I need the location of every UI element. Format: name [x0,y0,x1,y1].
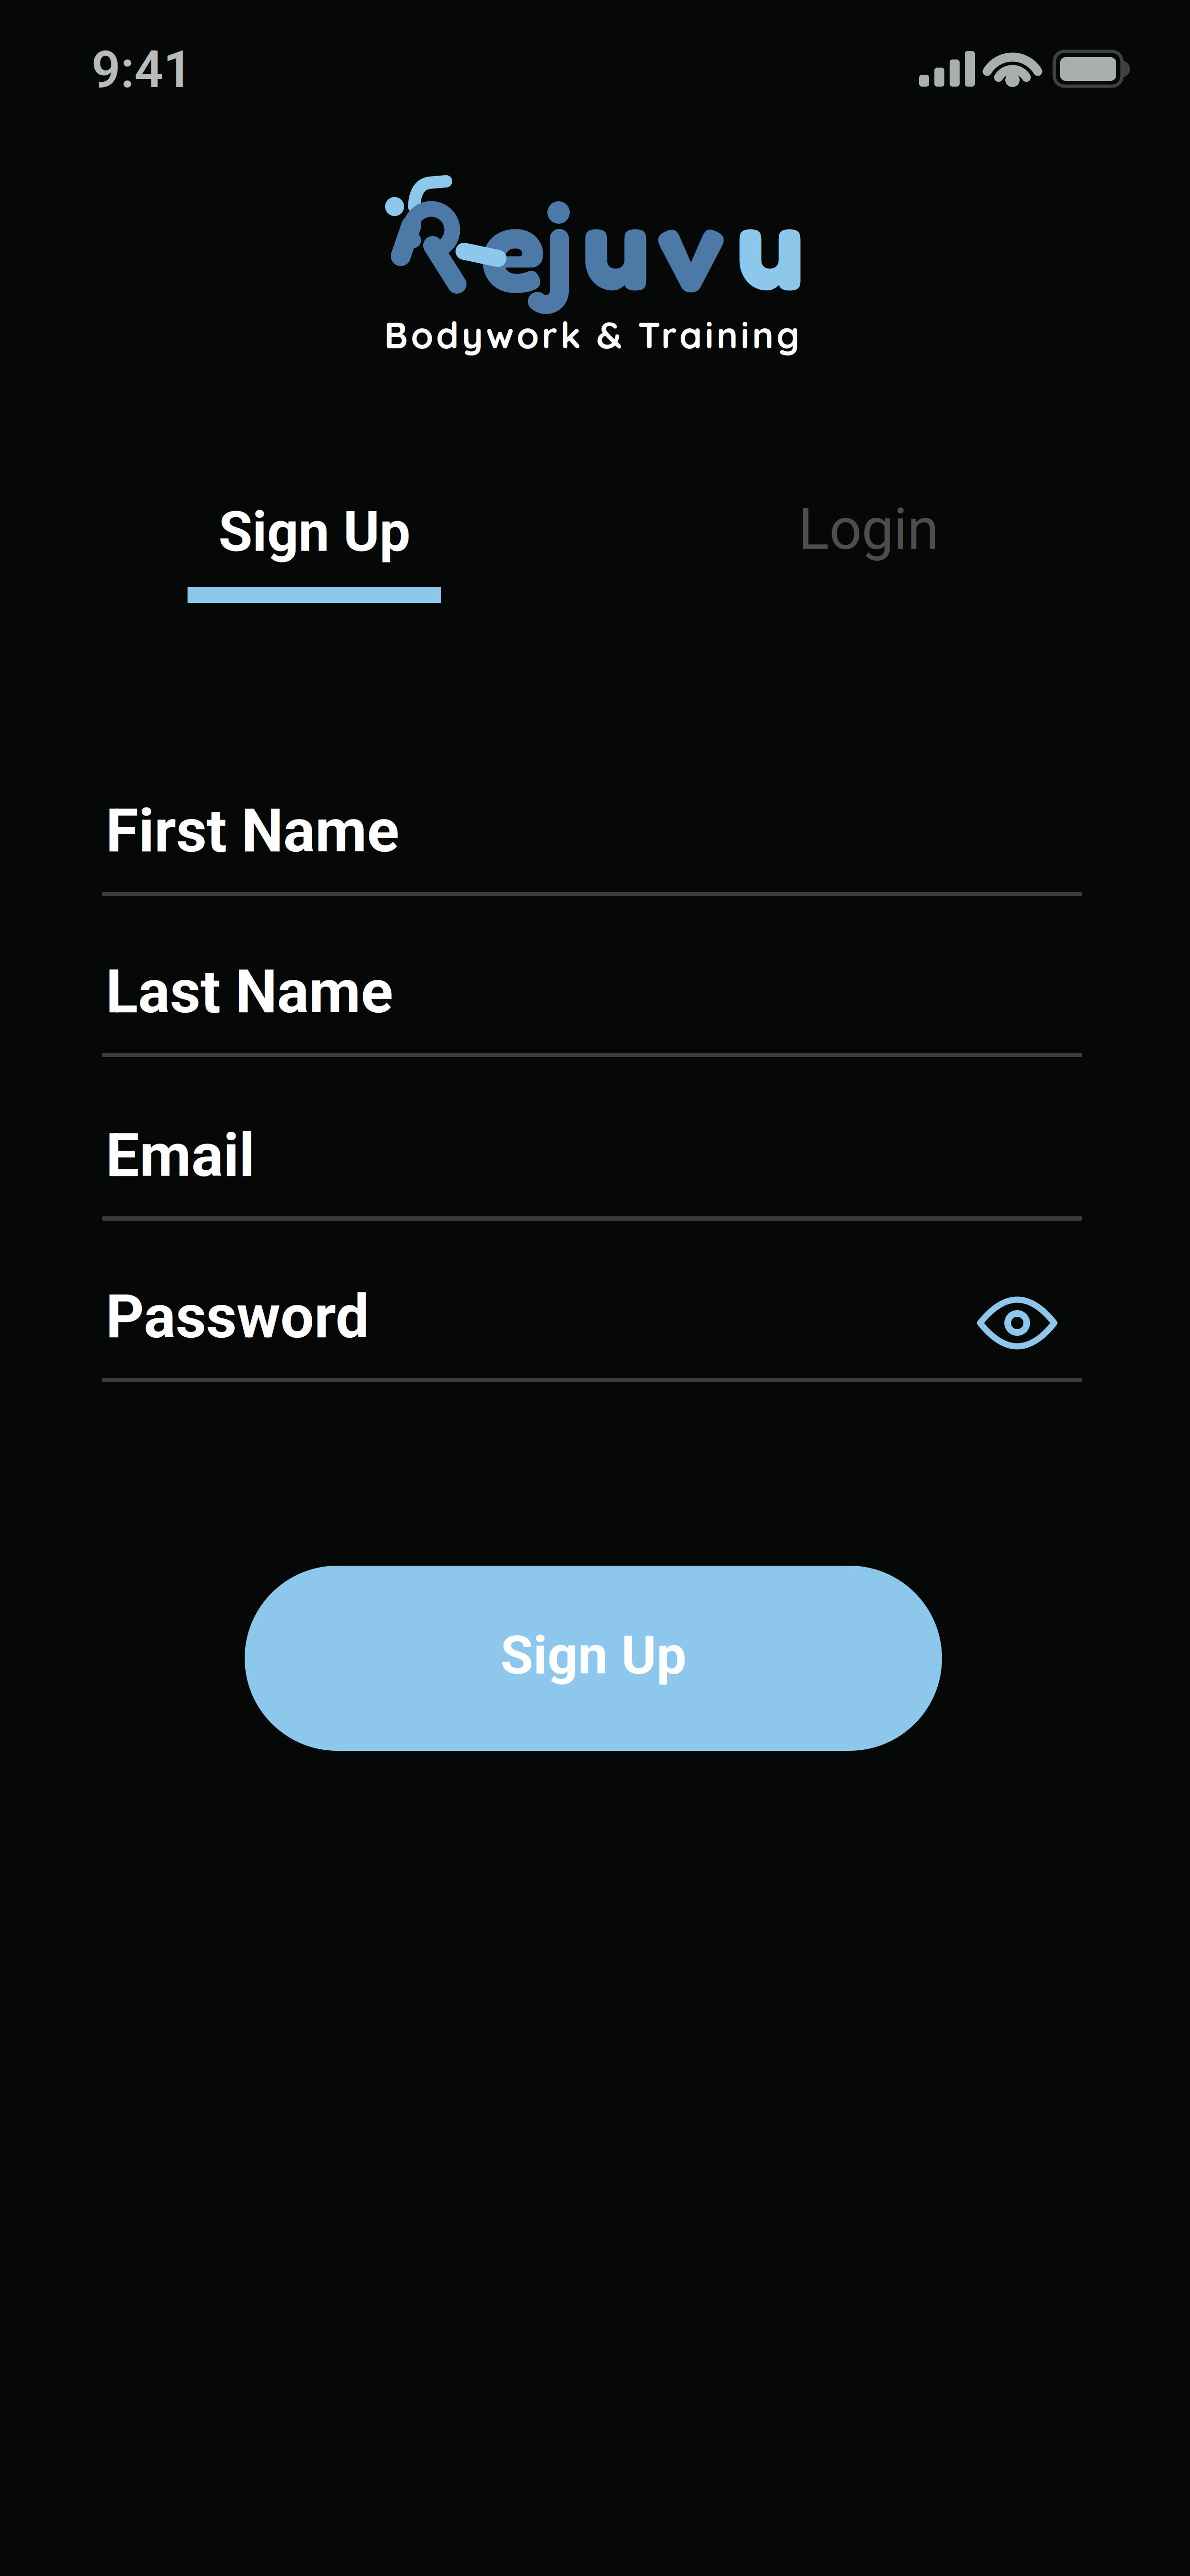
staticText: Last Name [106,957,393,1027]
button[interactable]: First Name [102,796,1082,896]
staticText: Sign Up [218,500,410,564]
staticText: 9:41 [91,40,192,99]
button[interactable]: Login [798,496,939,563]
staticText: u [582,173,650,318]
staticText: v [656,174,725,319]
staticText: Sign Up [500,1624,686,1687]
button[interactable]: Show password [976,1290,1058,1356]
button[interactable]: Sign Up [245,1566,942,1751]
button[interactable]: Password [102,1282,1082,1382]
button[interactable]: Last Name [102,957,1082,1057]
staticText: Bodywork & Training [384,312,799,357]
button[interactable]: Email [102,1121,1082,1221]
staticText: Password [106,1282,369,1352]
staticText: Login [798,496,939,563]
button[interactable]: Sign Up [188,500,441,603]
staticText: First Name [106,796,399,866]
staticText: Email [106,1121,255,1191]
staticText: e [481,174,545,319]
staticText: u [736,173,804,318]
